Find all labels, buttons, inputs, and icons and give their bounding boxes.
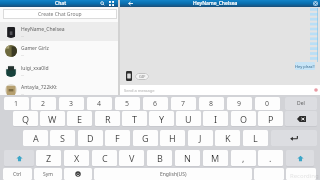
staticText: 9 xyxy=(237,99,242,109)
staticText: luigi_xxa0ld xyxy=(21,65,49,72)
button[interactable]: 2 xyxy=(31,97,56,110)
button[interactable]: L xyxy=(243,130,268,146)
button[interactable] xyxy=(64,168,92,180)
staticText: 2 xyxy=(41,99,46,109)
staticText: , xyxy=(242,152,245,164)
button[interactable]: 8 xyxy=(199,97,224,110)
button[interactable]: Search xyxy=(99,0,106,7)
button[interactable]: Gamer Girlz xyxy=(0,41,120,61)
button[interactable]: 4 xyxy=(87,97,112,110)
staticText: Antayla_722kKt xyxy=(21,84,57,91)
staticText: English(US) xyxy=(160,171,187,178)
button[interactable]: More options xyxy=(108,0,115,7)
button[interactable]: Send xyxy=(314,88,318,92)
staticText: Sym xyxy=(43,171,53,178)
button[interactable]: X xyxy=(64,150,89,166)
staticText: A xyxy=(33,132,39,144)
staticText: F xyxy=(115,132,120,144)
button[interactable]: N xyxy=(175,150,200,166)
staticText: . xyxy=(269,152,272,164)
button[interactable]: M xyxy=(203,150,228,166)
button[interactable]: 9 xyxy=(227,97,252,110)
button[interactable]: 1 xyxy=(4,97,29,110)
staticText: HeyName_Chelsea xyxy=(193,0,238,7)
staticText: B xyxy=(157,152,163,164)
button[interactable]: Ctrl xyxy=(3,168,32,180)
button[interactable] xyxy=(4,150,34,166)
button[interactable]: P xyxy=(258,111,283,126)
button[interactable]: A xyxy=(23,130,48,146)
button[interactable] xyxy=(286,168,316,180)
button[interactable]: GIF xyxy=(135,73,149,80)
staticText: L xyxy=(253,132,258,144)
button[interactable]: 7 xyxy=(171,97,196,110)
button[interactable]: Close xyxy=(312,0,319,7)
staticText: Gamer Girlz xyxy=(21,45,49,52)
button[interactable]: H xyxy=(160,130,185,146)
staticText: Del xyxy=(297,100,305,107)
staticText: K xyxy=(225,132,231,144)
staticText: Create Chat Group xyxy=(38,11,82,18)
button[interactable]: K xyxy=(215,130,240,146)
staticText: 4 xyxy=(97,99,102,109)
staticText: 6 xyxy=(153,99,158,109)
button[interactable]: English(US) xyxy=(94,168,252,180)
staticText: HeyName_Chelsea xyxy=(21,26,65,33)
button[interactable]: Create Chat Group xyxy=(3,9,117,19)
button[interactable]: 3 xyxy=(59,97,84,110)
button[interactable]: B xyxy=(147,150,172,166)
button[interactable] xyxy=(285,111,317,126)
button[interactable]: S xyxy=(50,130,75,146)
button[interactable] xyxy=(271,130,317,146)
staticText: ··· xyxy=(21,92,25,97)
button[interactable]: Sticker xyxy=(125,71,132,81)
button[interactable]: W xyxy=(40,111,65,126)
button[interactable]: , xyxy=(231,150,256,166)
button[interactable]: Del xyxy=(285,97,317,110)
staticText: R xyxy=(105,113,111,125)
button[interactable]: V xyxy=(119,150,144,166)
staticText: Y xyxy=(159,113,165,125)
staticText: 3 xyxy=(69,99,74,109)
staticText: Send a message xyxy=(124,88,155,93)
button[interactable]: R xyxy=(95,111,120,126)
staticText: ··· xyxy=(21,34,25,39)
button[interactable]: Antayla_722kKt xyxy=(0,80,120,100)
staticText: Ctrl xyxy=(13,171,22,178)
button[interactable]: U xyxy=(176,111,201,126)
staticText: 8 xyxy=(209,99,214,109)
button[interactable]: Y xyxy=(149,111,174,126)
staticText: 0 xyxy=(265,99,270,109)
button[interactable]: . xyxy=(258,150,283,166)
button[interactable]: T xyxy=(122,111,147,126)
button[interactable]: F xyxy=(105,130,130,146)
button[interactable]: O xyxy=(231,111,256,126)
button[interactable]: I xyxy=(203,111,228,126)
button[interactable]: C xyxy=(92,150,117,166)
button[interactable]: Sym xyxy=(34,168,62,180)
button[interactable] xyxy=(286,150,314,166)
staticText: X xyxy=(74,152,80,164)
button[interactable]: E xyxy=(67,111,92,126)
button[interactable]: luigi_xxa0ld xyxy=(0,61,120,81)
button[interactable]: G xyxy=(133,130,158,146)
button[interactable]: 6 xyxy=(143,97,168,110)
button[interactable]: 0 xyxy=(255,97,280,110)
staticText: Hey plsss!! xyxy=(295,64,315,69)
button[interactable]: J xyxy=(188,130,213,146)
button[interactable]: HeyName_Chelsea xyxy=(0,22,120,42)
staticText: I xyxy=(214,113,218,125)
button[interactable]: D xyxy=(78,130,103,146)
staticText: S xyxy=(60,132,65,144)
staticText: O xyxy=(240,113,248,125)
staticText: C xyxy=(102,152,108,164)
button[interactable]: Back xyxy=(127,0,134,7)
button[interactable]: Q xyxy=(13,111,38,126)
staticText: Z xyxy=(46,152,52,164)
staticText: Chat xyxy=(55,0,67,7)
button[interactable]: Z xyxy=(36,150,61,166)
staticText: M xyxy=(211,152,220,164)
button[interactable]: 5 xyxy=(115,97,140,110)
staticText: D xyxy=(87,132,94,144)
